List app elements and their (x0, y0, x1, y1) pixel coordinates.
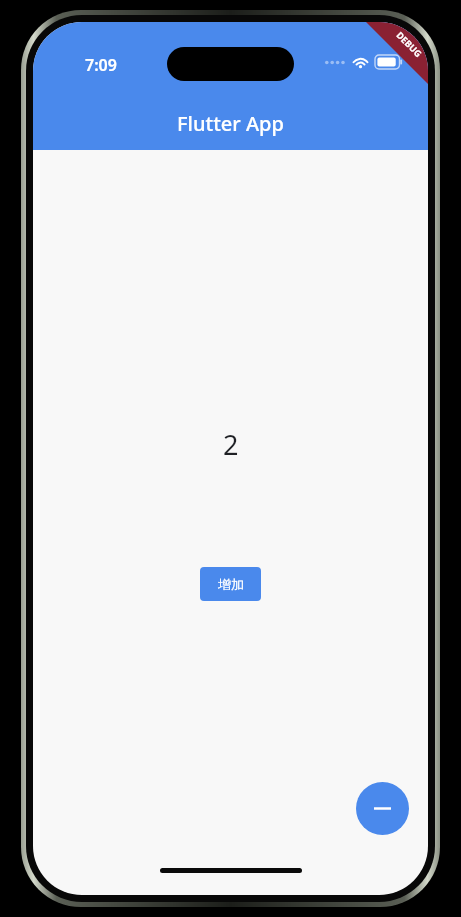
button[interactable]: 增加 (200, 567, 261, 601)
staticText: 2 (223, 426, 239, 463)
staticText: 7:09 (85, 54, 117, 76)
staticText: Flutter App (177, 110, 284, 137)
staticText: 增加 (218, 576, 244, 592)
staticText: DEBUG (394, 29, 425, 59)
button[interactable]: Decrement counter (356, 782, 409, 835)
